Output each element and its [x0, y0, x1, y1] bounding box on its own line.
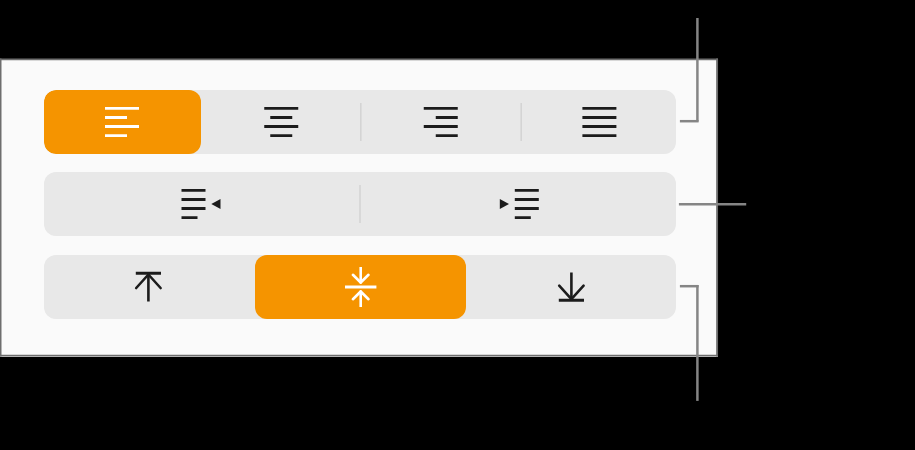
- button[interactable]: Align middle: [255, 255, 466, 319]
- button[interactable]: Justify: [521, 90, 676, 154]
- button[interactable]: Align left: [44, 90, 201, 154]
- button[interactable]: Align bottom: [466, 255, 676, 319]
- button[interactable]: Increase indent: [360, 172, 676, 236]
- button[interactable]: Align right: [361, 90, 521, 154]
- button[interactable]: Decrease indent: [44, 172, 360, 236]
- button[interactable]: Align center: [201, 90, 361, 154]
- button[interactable]: Align top: [44, 255, 255, 319]
